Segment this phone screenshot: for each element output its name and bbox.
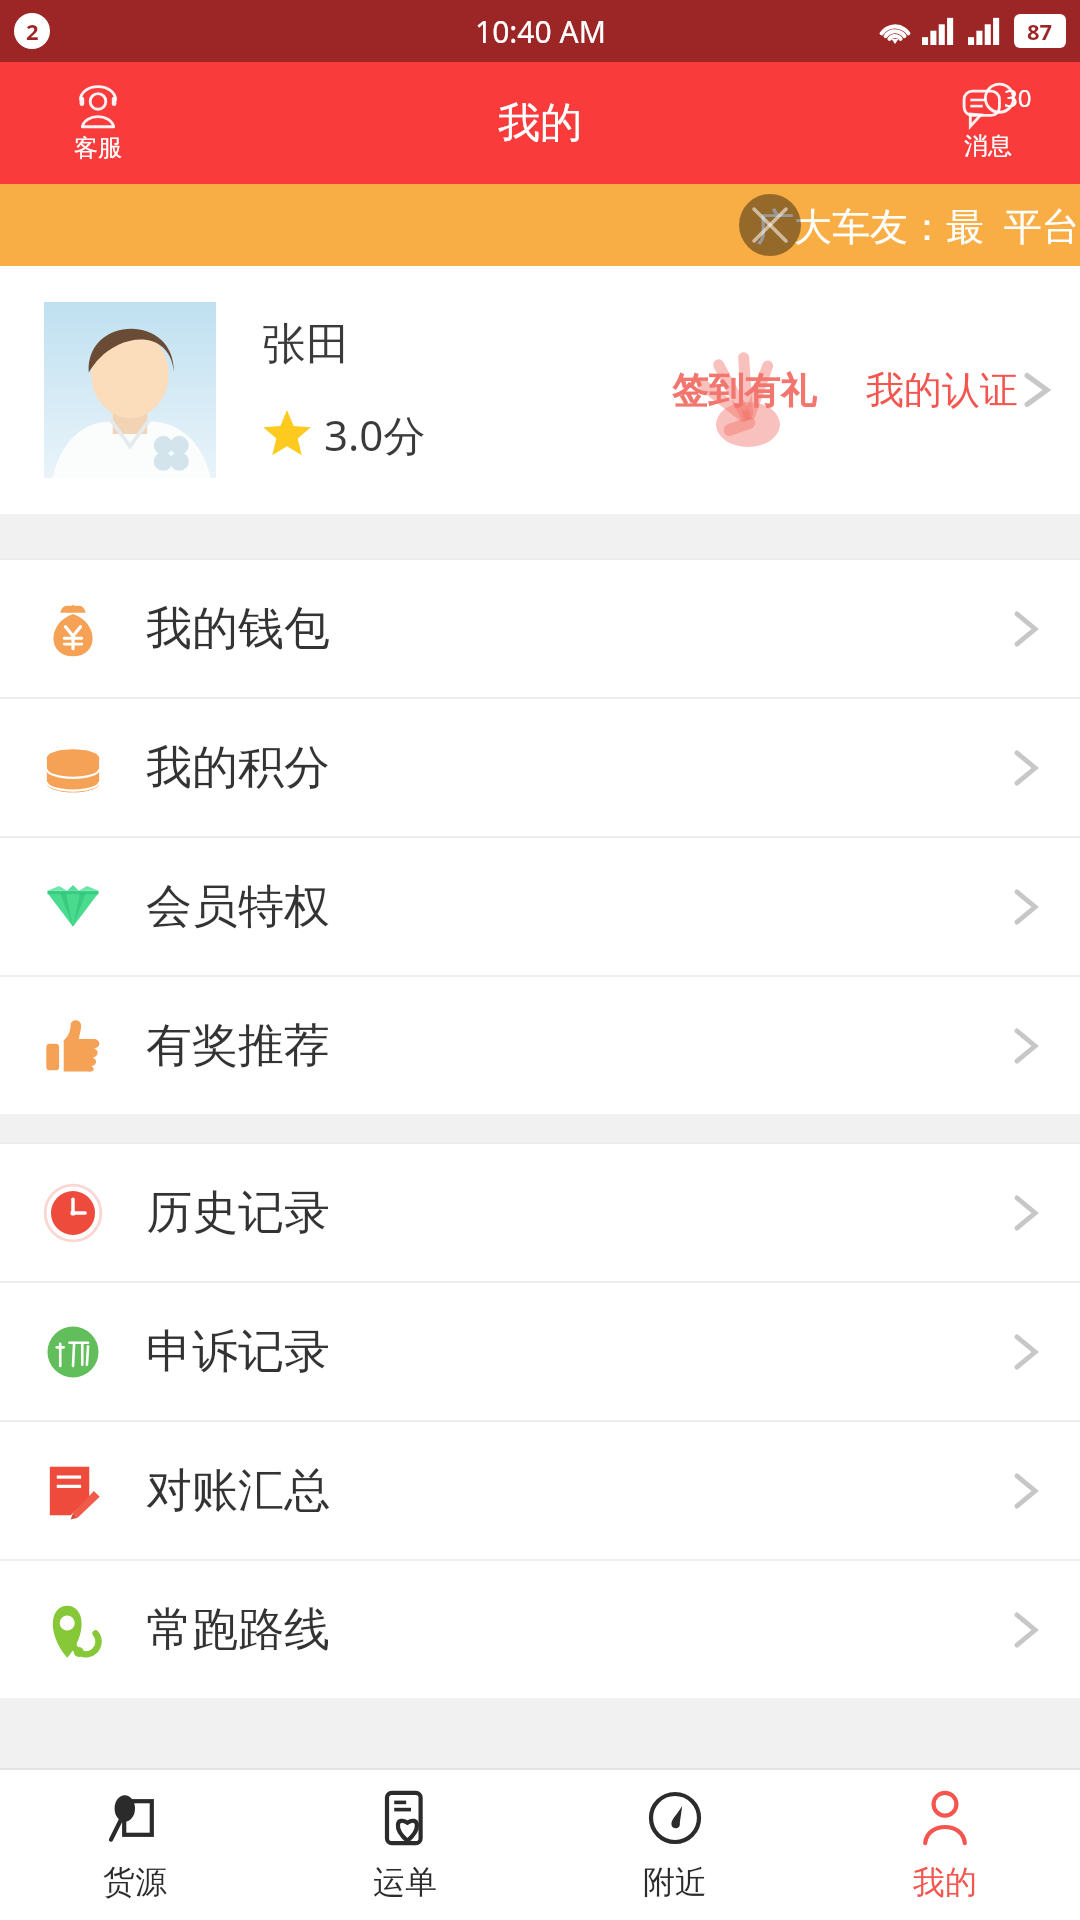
staticText: 我的积分	[146, 739, 330, 797]
staticText: 历史记录	[146, 1184, 330, 1242]
staticText: 附近	[643, 1862, 707, 1902]
button[interactable]: 消息	[962, 85, 1014, 161]
staticText: 签到有礼	[672, 368, 816, 413]
staticText: 会员特权	[146, 878, 330, 936]
button[interactable]: 货源	[0, 1770, 270, 1920]
staticText: 运单	[373, 1862, 437, 1902]
staticText: 张田	[262, 317, 350, 372]
button[interactable]: 运单	[270, 1770, 540, 1920]
staticText: 10:40 AM	[475, 11, 606, 52]
staticText: 我的	[913, 1862, 977, 1902]
button[interactable]: 客服	[74, 83, 122, 163]
staticText: 有奖推荐	[146, 1017, 330, 1075]
staticText: 对账汇总	[146, 1462, 330, 1520]
button[interactable]: 签到有礼	[644, 315, 844, 465]
button[interactable]: 我的钱包	[0, 560, 1080, 697]
button[interactable]: 申诉记录	[0, 1283, 1080, 1420]
staticText: 申诉记录	[146, 1323, 330, 1381]
staticText: 我的认证	[866, 366, 1018, 414]
staticText: 常跑路线	[146, 1601, 330, 1659]
staticText: 货源	[103, 1862, 167, 1902]
staticText: 2	[26, 16, 39, 46]
button[interactable]: 对账汇总	[0, 1422, 1080, 1559]
button[interactable]: 历史记录	[0, 1144, 1080, 1281]
staticText: 客服	[74, 133, 122, 163]
button[interactable]: 我的	[810, 1770, 1080, 1920]
staticText: 87	[1027, 16, 1053, 46]
button[interactable]: 附近	[540, 1770, 810, 1920]
staticText: 我的钱包	[146, 600, 330, 658]
button[interactable]: 会员特权	[0, 838, 1080, 975]
staticText: 我的	[498, 97, 582, 150]
button[interactable]: 关闭	[739, 194, 801, 256]
button[interactable]: 我的积分	[0, 699, 1080, 836]
staticText: 3.0分	[324, 406, 426, 463]
staticText: 消息	[964, 131, 1012, 161]
staticText: 30	[1004, 81, 1032, 114]
button[interactable]: 我的认证	[866, 366, 1050, 414]
button[interactable]: 有奖推荐	[0, 977, 1080, 1114]
button[interactable]: 常跑路线	[0, 1561, 1080, 1698]
staticText: 广大车友：最 平台	[756, 199, 1080, 251]
